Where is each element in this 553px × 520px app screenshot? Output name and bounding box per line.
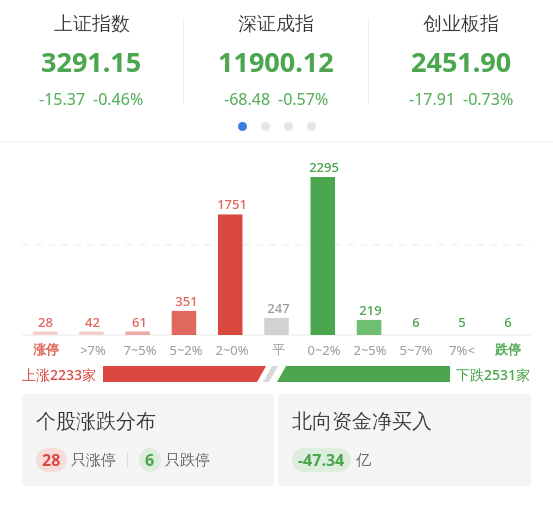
button[interactable]: 28: [0, 142, 553, 361]
staticText: 上证指数: [54, 12, 130, 36]
staticText: 11900.12: [218, 43, 334, 80]
staticText: -0.46%: [93, 88, 144, 110]
staticText: -0.73%: [463, 88, 514, 110]
staticText: 61: [132, 313, 147, 331]
staticText: -0.57%: [278, 88, 329, 110]
staticText: 6: [412, 313, 420, 331]
button[interactable]: 上涨2233家: [0, 361, 553, 387]
staticText: 只跌停: [165, 451, 210, 470]
staticText: 5: [458, 313, 466, 331]
staticText: 28: [38, 313, 53, 331]
staticText: 2~0%: [215, 341, 249, 359]
button[interactable]: 上证指数: [0, 0, 183, 122]
staticText: -15.37: [39, 88, 86, 110]
staticText: 219: [359, 301, 382, 319]
staticText: 跌停: [495, 341, 521, 357]
staticText: 深证成指: [238, 12, 314, 36]
staticText: 3291.15: [41, 43, 142, 80]
staticText: 351: [175, 292, 198, 310]
staticText: 创业板指: [423, 12, 499, 36]
staticText: -68.48: [224, 88, 271, 110]
staticText: -17.91: [409, 88, 456, 110]
staticText: 5~7%: [399, 341, 433, 359]
staticText: 亿: [356, 451, 371, 470]
staticText: >7%: [80, 341, 106, 359]
staticText: 上涨2233家: [22, 365, 97, 384]
staticText: 个股涨跌分布: [36, 409, 156, 434]
staticText: 6: [145, 449, 155, 471]
staticText: 5~2%: [169, 341, 203, 359]
staticText: 北向资金净买入: [292, 409, 432, 434]
staticText: -47.34: [298, 449, 345, 471]
staticText: 平: [272, 341, 285, 357]
staticText: 7~5%: [123, 341, 157, 359]
staticText: 涨停: [33, 341, 59, 357]
staticText: 只涨停: [71, 451, 116, 470]
button[interactable]: 创业板指: [369, 0, 553, 122]
staticText: 247: [267, 299, 290, 317]
staticText: 2~5%: [353, 341, 387, 359]
staticText: 2295: [309, 158, 339, 176]
staticText: 28: [42, 449, 61, 471]
button[interactable]: 深证成指: [184, 0, 368, 122]
staticText: 0~2%: [307, 341, 341, 359]
staticText: 42: [85, 313, 100, 331]
staticText: 下跌2531家: [456, 365, 531, 384]
staticText: 2451.90: [411, 43, 512, 80]
button[interactable]: 个股涨跌分布: [22, 394, 274, 486]
button[interactable]: 北向资金净买入: [278, 394, 531, 486]
staticText: 7%<: [449, 341, 475, 359]
staticText: 1751: [217, 195, 247, 213]
staticText: 6: [504, 313, 512, 331]
